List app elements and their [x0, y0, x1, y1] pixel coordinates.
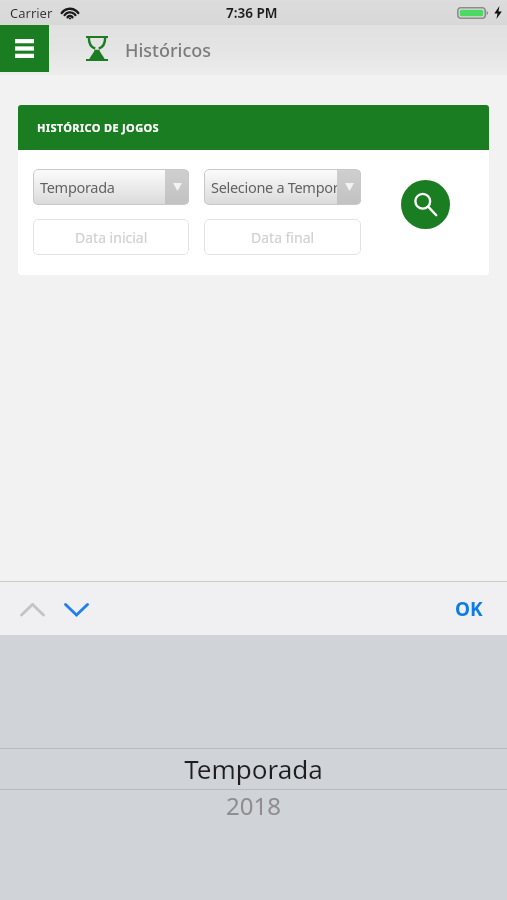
staticText: Temporada	[40, 177, 165, 197]
button[interactable]: Temporada	[33, 169, 189, 205]
staticText: HISTÓRICO DE JOGOS	[37, 120, 159, 135]
staticText: Selecione a Tempor	[211, 177, 337, 197]
staticText: OK	[455, 596, 483, 622]
button[interactable]: Data final	[204, 219, 361, 255]
staticText: Data inicial	[75, 228, 148, 247]
staticText: Carrier	[10, 4, 53, 22]
button[interactable]: OK	[455, 596, 483, 622]
button[interactable]: Previous field	[13, 587, 51, 631]
button[interactable]: Selecione a Tempor	[204, 169, 361, 205]
button[interactable]: Data inicial	[33, 219, 189, 255]
staticText: 7:36 PM	[226, 4, 278, 22]
button[interactable]: Menu	[0, 25, 49, 72]
staticText: 2018	[226, 789, 281, 822]
button[interactable]: Next field	[57, 587, 95, 631]
staticText: Data final	[251, 228, 315, 247]
staticText: Históricos	[125, 38, 212, 63]
staticText: Temporada	[184, 751, 323, 786]
button[interactable]: Search	[401, 180, 450, 229]
